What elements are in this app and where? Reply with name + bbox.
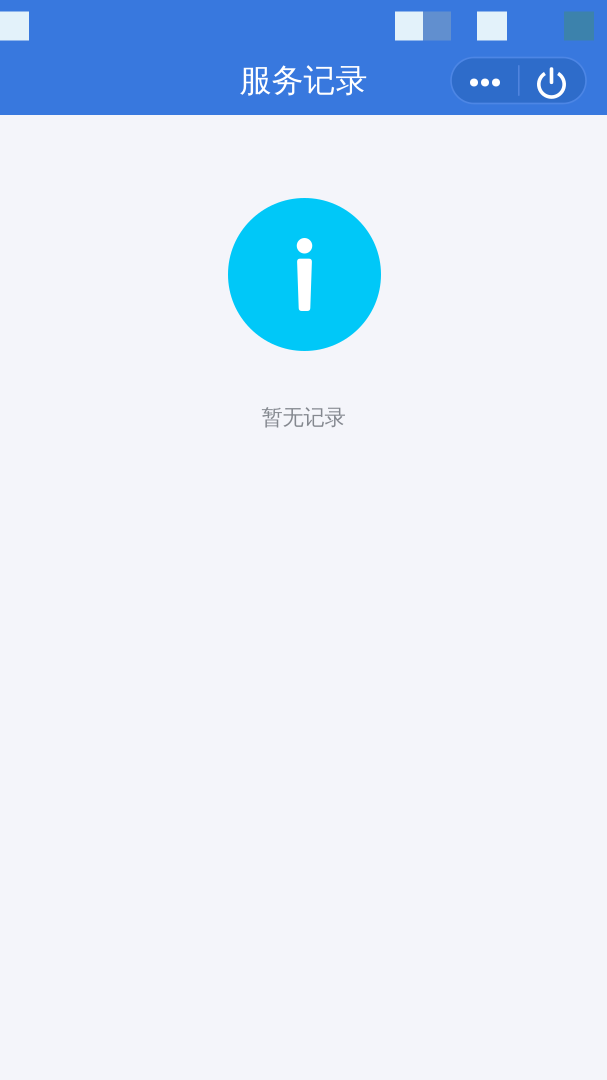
staticText: 暂无记录 <box>261 404 345 431</box>
staticText: 服务记录 <box>239 60 367 101</box>
button[interactable]: Close mini program <box>520 57 586 103</box>
button[interactable]: More <box>451 57 518 103</box>
